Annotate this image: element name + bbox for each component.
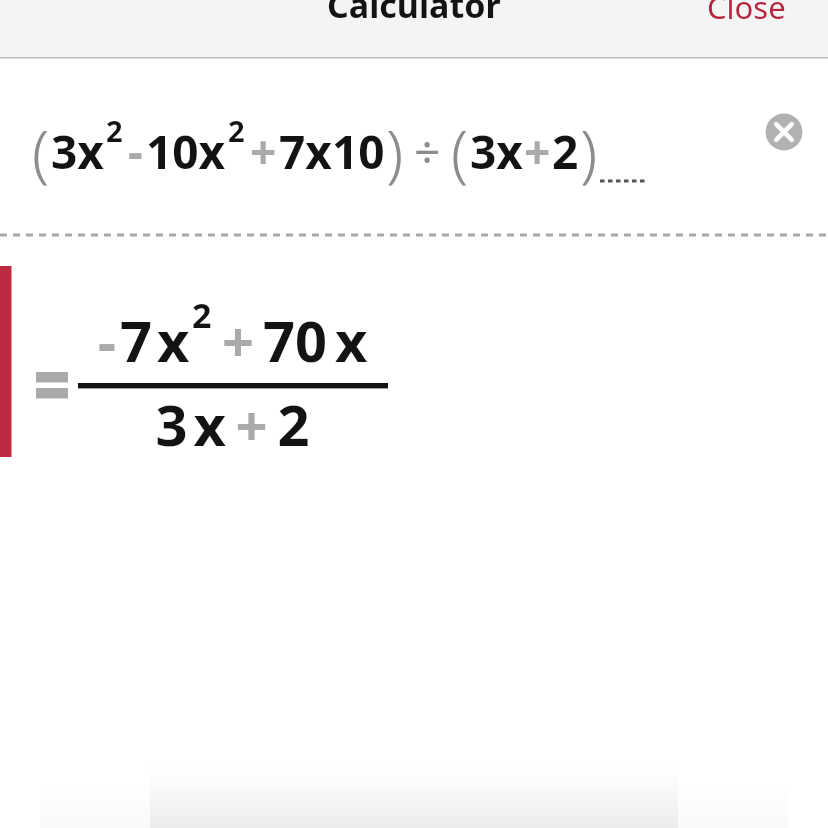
button[interactable]: Clear expression [758,106,810,158]
button[interactable]: Result [0,250,828,470]
button[interactable]: Close [678,0,808,57]
button[interactable]: Expression input [0,59,758,233]
